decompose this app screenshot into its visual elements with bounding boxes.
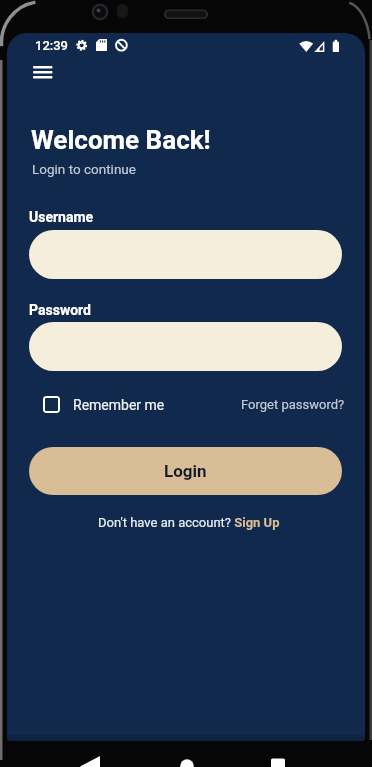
staticText: Welcome Back! xyxy=(31,125,211,155)
staticText: Username xyxy=(29,209,94,225)
button[interactable]: Forget password? xyxy=(205,393,345,415)
button[interactable] xyxy=(29,322,342,371)
staticText: 12:39 xyxy=(35,38,69,53)
button[interactable]: Don't have an account? Sign Up xyxy=(10,515,365,530)
staticText: Login to continue xyxy=(32,161,136,177)
button[interactable] xyxy=(29,230,342,279)
staticText: Remember me xyxy=(73,397,165,413)
button[interactable]: Login xyxy=(29,447,342,495)
staticText: Password xyxy=(29,302,91,318)
staticText: Don't have an account? Sign Up xyxy=(98,515,280,530)
button[interactable] xyxy=(43,396,60,413)
staticText: Forget password? xyxy=(241,397,345,412)
button[interactable] xyxy=(25,58,61,94)
staticText: Login xyxy=(164,461,207,481)
